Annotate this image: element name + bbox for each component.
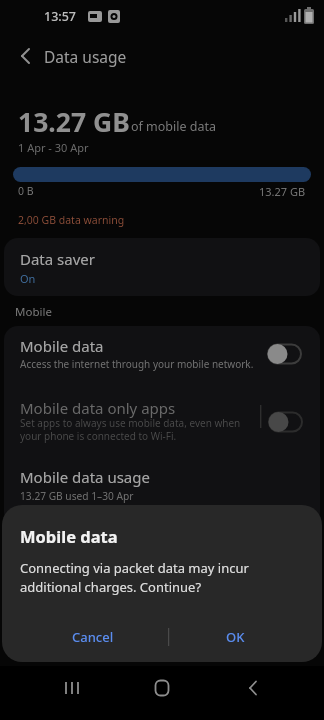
button[interactable] (4, 462, 320, 506)
button[interactable] (4, 392, 320, 454)
staticText: 2,00 GB data warning (18, 213, 125, 227)
staticText: Connecting via packet data may incur (20, 559, 249, 576)
button[interactable] (56, 675, 88, 701)
staticText: Mobile data (20, 525, 118, 547)
staticText: OK (226, 628, 245, 646)
staticText: 13.27 GB used 1–30 Apr (20, 489, 134, 503)
staticText: 0 B (18, 184, 34, 198)
button[interactable]: OK (203, 624, 267, 650)
staticText: Set apps to always use mobile data, even… (20, 416, 241, 430)
button[interactable] (4, 238, 320, 296)
button[interactable] (264, 341, 304, 367)
staticText: your phone is connected to Wi-Fi. (20, 429, 177, 443)
button[interactable] (265, 409, 305, 435)
staticText: Access the internet through your mobile … (20, 357, 254, 371)
button[interactable] (146, 675, 178, 701)
staticText: of mobile data (131, 118, 217, 135)
staticText: 1 Apr - 30 Apr (18, 140, 89, 155)
staticText: Mobile data only apps (20, 398, 176, 418)
button[interactable] (10, 44, 40, 68)
staticText: Mobile (15, 304, 52, 320)
staticText: Mobile data usage (20, 467, 150, 487)
staticText: Data usage (44, 46, 127, 67)
staticText: Data saver (20, 249, 95, 269)
staticText: 13.27 GB (259, 184, 306, 199)
staticText: Mobile data (20, 336, 104, 356)
staticText: 13.27 GB (18, 104, 130, 138)
button[interactable]: Cancel (53, 624, 133, 650)
button[interactable] (238, 675, 270, 701)
button[interactable] (4, 330, 320, 386)
staticText: additional charges. Continue? (20, 578, 202, 595)
staticText: 13:57 (44, 8, 77, 25)
staticText: Cancel (72, 628, 114, 646)
staticText: On (20, 271, 36, 286)
